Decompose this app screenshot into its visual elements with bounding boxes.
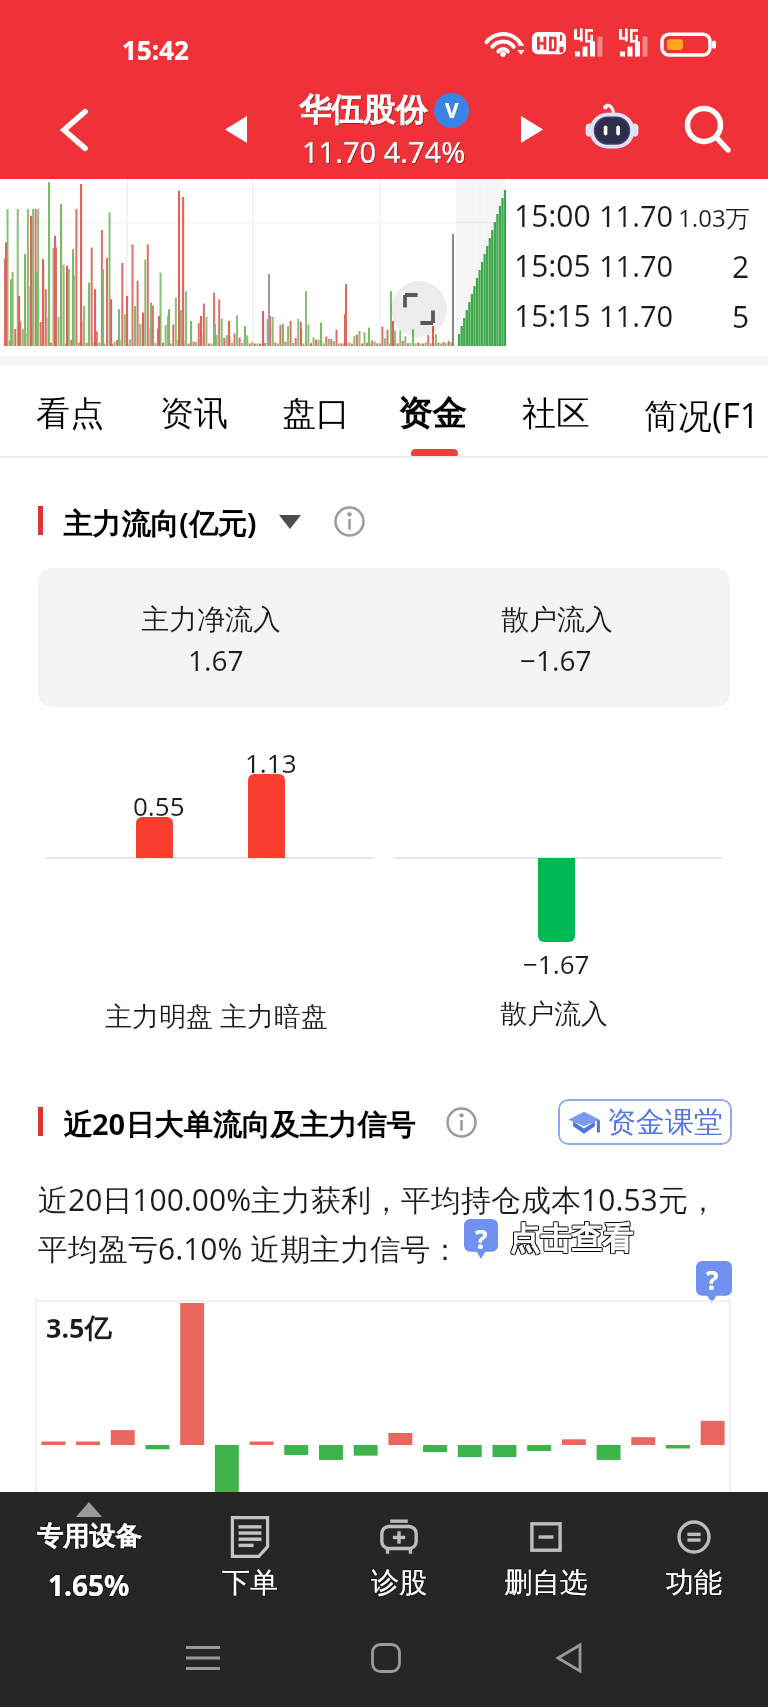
staticText: 删自选 <box>503 1566 587 1601</box>
button[interactable]: 资金 <box>380 365 484 458</box>
staticText: 诊股 <box>370 1564 426 1599</box>
staticText: 点击查看 <box>509 1219 633 1258</box>
staticText: 1.65% <box>47 1566 129 1604</box>
staticText: 诊股 <box>372 1565 428 1600</box>
staticText: 下单 <box>223 1564 279 1599</box>
staticText: 11.70 <box>599 246 674 285</box>
button[interactable]: Previous stock <box>198 80 274 179</box>
staticText: 点击查看 <box>510 1220 634 1259</box>
staticText: 资金 <box>398 392 466 435</box>
staticText: 华伍股份 <box>300 91 428 131</box>
button[interactable]: 看点 <box>18 365 122 458</box>
staticText: 2 <box>732 246 750 287</box>
staticText: 1.67 <box>188 641 244 679</box>
button[interactable]: Fullscreen chart <box>391 281 447 337</box>
staticText: 资讯 <box>160 392 228 435</box>
button[interactable]: AI assistant <box>568 80 656 179</box>
staticText: 近20日100.00%主力获利，平均持仓成本10.53元， <box>38 1179 718 1220</box>
staticText: 1.13 <box>245 745 297 780</box>
button[interactable]: 盘口 <box>264 365 368 458</box>
staticText: 专用设备 <box>38 1521 142 1554</box>
staticText: 看点 <box>36 392 104 435</box>
staticText: 删自选 <box>504 1565 588 1600</box>
staticText: −1.67 <box>523 946 590 981</box>
staticText: 11.70 <box>599 196 674 235</box>
staticText: 点击查看 <box>508 1220 632 1259</box>
staticText: 1.65% <box>49 1566 131 1604</box>
staticText: ? <box>706 1262 719 1297</box>
button[interactable]: 下单 <box>180 1492 320 1620</box>
button[interactable]: 资讯 <box>142 365 246 458</box>
button[interactable] <box>38 568 730 707</box>
staticText: 1.03万 <box>678 201 750 234</box>
staticText: 11.70 4.74% <box>302 132 466 171</box>
staticText: 功能 <box>665 1566 721 1601</box>
staticText: 下单 <box>221 1565 277 1600</box>
staticText: 下单 <box>223 1565 279 1600</box>
button[interactable]: 社区 <box>504 365 608 458</box>
button[interactable]: Search <box>662 80 754 179</box>
staticText: 功能 <box>667 1566 723 1601</box>
staticText: 主力净流入 <box>141 602 281 637</box>
staticText: 资金课堂 <box>607 1104 723 1141</box>
staticText: 诊股 <box>371 1566 427 1601</box>
staticText: 15:00 <box>514 195 591 236</box>
staticText: 删自选 <box>503 1565 587 1600</box>
staticText: 15:05 <box>514 245 591 286</box>
staticText: 专用设备 <box>37 1520 141 1553</box>
staticText: 功能 <box>666 1565 722 1600</box>
staticText: 11.70 4.74% <box>303 133 467 172</box>
staticText: 删自选 <box>505 1564 589 1599</box>
staticText: 1.65% <box>49 1567 131 1605</box>
button[interactable]: Info <box>446 1107 477 1138</box>
button[interactable]: 简况(F1 <box>626 365 768 458</box>
staticText: 诊股 <box>371 1564 427 1599</box>
staticText: 平均盈亏6.10% 近期主力信号： <box>38 1228 461 1269</box>
button[interactable]: 功能 <box>624 1492 764 1620</box>
staticText: 专用设备 <box>38 1519 142 1552</box>
staticText: 点击查看 <box>509 1220 633 1259</box>
staticText: 专用设备 <box>36 1521 140 1554</box>
staticText: 11.70 <box>599 296 674 335</box>
staticText: 下单 <box>222 1566 278 1601</box>
staticText: 点击查看 <box>509 1218 633 1257</box>
staticText: 专用设备 <box>38 1520 142 1553</box>
button[interactable]: 删自选 <box>476 1492 616 1620</box>
button[interactable]: Info <box>334 506 365 537</box>
staticText: 诊股 <box>372 1566 428 1601</box>
staticText: 功能 <box>665 1564 721 1599</box>
staticText: 主力流向(亿元) <box>63 503 257 543</box>
button[interactable]: Next stock <box>494 80 570 179</box>
staticText: 1.65% <box>48 1565 130 1603</box>
staticText: 主力明盘 主力暗盘 <box>105 997 329 1034</box>
staticText: 专用设备 <box>37 1519 141 1552</box>
button[interactable]: Home <box>355 1630 417 1686</box>
staticText: 简况(F1 <box>644 392 760 438</box>
staticText: 删自选 <box>505 1566 589 1601</box>
staticText: 下单 <box>222 1564 278 1599</box>
staticText: 诊股 <box>370 1565 426 1600</box>
staticText: 下单 <box>223 1566 279 1601</box>
staticText: 功能 <box>667 1565 723 1600</box>
button[interactable]: 专用设备 <box>16 1492 162 1620</box>
staticText: 散户流入 <box>501 602 613 637</box>
staticText: 下单 <box>221 1566 277 1601</box>
staticText: 1.65% <box>47 1565 129 1603</box>
staticText: 专用设备 <box>36 1519 140 1552</box>
staticText: 社区 <box>522 392 590 435</box>
staticText: 1.65% <box>48 1566 130 1604</box>
button[interactable]: Recent apps <box>172 1630 234 1686</box>
staticText: 诊股 <box>370 1566 426 1601</box>
button[interactable]: 诊股 <box>329 1492 469 1620</box>
staticText: 华伍股份 <box>299 90 427 130</box>
staticText: 3.5亿 <box>46 1309 112 1346</box>
staticText: −1.67 <box>520 641 592 679</box>
button[interactable]: Back <box>538 1630 600 1686</box>
staticText: 功能 <box>667 1564 723 1599</box>
staticText: 5 <box>732 296 750 337</box>
staticText: 盘口 <box>282 392 350 435</box>
button[interactable]: Back <box>28 80 122 179</box>
staticText: 1.65% <box>48 1567 130 1605</box>
button[interactable]: 资金课堂 <box>558 1099 732 1145</box>
staticText: 诊股 <box>371 1565 427 1600</box>
